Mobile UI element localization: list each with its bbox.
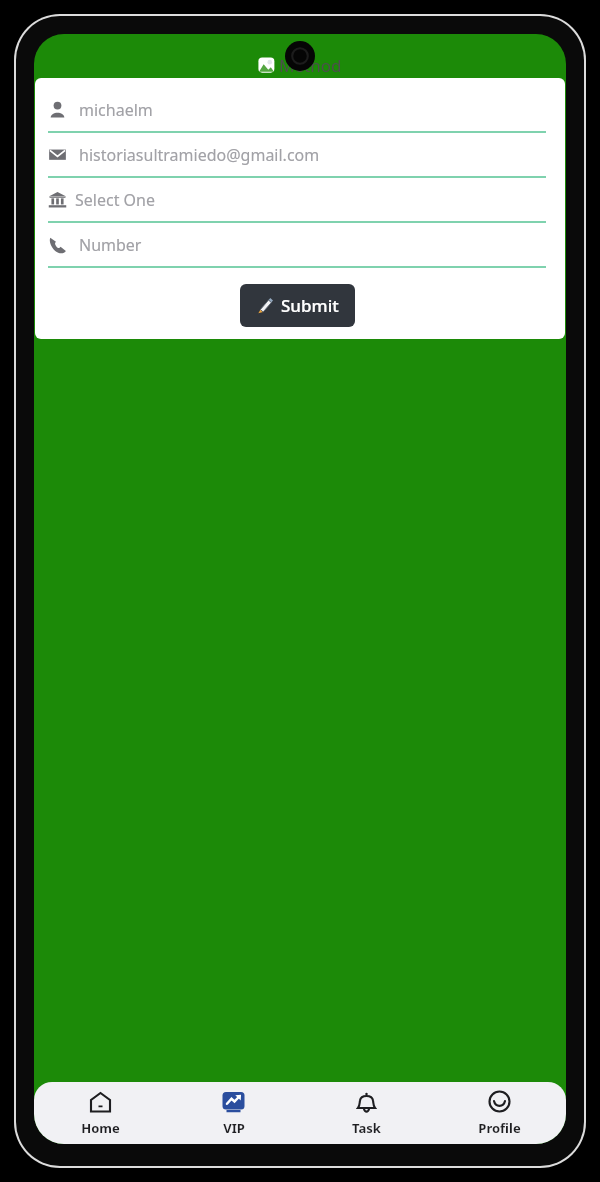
staticText: VIP [223,1119,245,1137]
button[interactable]: Profile [433,1082,566,1144]
staticText: Task [352,1119,381,1137]
staticText: Profile [478,1119,521,1137]
button[interactable]: Task [300,1082,433,1144]
staticText: Home [81,1119,120,1137]
other: Home [88,1090,113,1115]
staticText: michaelm [79,99,153,121]
button[interactable]: historiasultramiedo@gmail.com [48,133,546,178]
staticText: Select One [75,189,155,211]
other: Task [354,1090,379,1115]
button[interactable]: michaelm [48,88,546,133]
staticText: Submit [281,294,339,317]
button[interactable]: Number [48,223,546,268]
staticText: Method [279,54,342,77]
staticText: Number [79,234,142,256]
button[interactable]: Select One [48,178,546,223]
other: Profile [487,1090,512,1115]
other: VIP [221,1090,246,1115]
staticText: historiasultramiedo@gmail.com [79,144,320,166]
button[interactable]: VIP [167,1082,300,1144]
button[interactable]: Home [34,1082,167,1144]
button[interactable]: Submit [240,284,355,327]
